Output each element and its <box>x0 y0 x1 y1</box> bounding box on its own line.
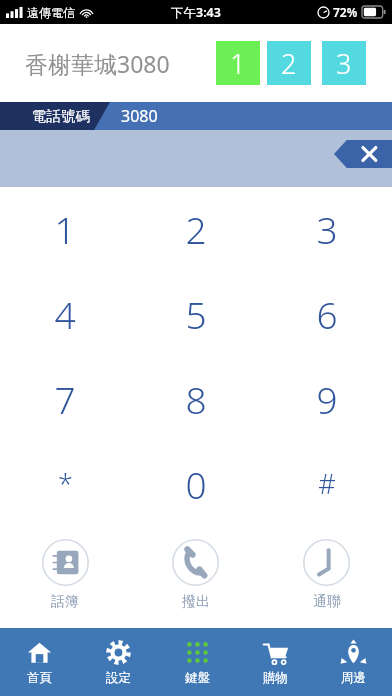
staticText: * <box>58 465 73 502</box>
staticText: 設定 <box>106 670 131 686</box>
staticText: 話簿 <box>51 593 79 611</box>
staticText: 下午3:43 <box>171 4 221 21</box>
staticText: 首頁 <box>27 670 52 686</box>
staticText: 3 <box>336 45 352 82</box>
staticText: 撥出 <box>182 593 210 611</box>
button[interactable]: 撥出 <box>130 526 261 628</box>
staticText: 0 <box>185 459 207 509</box>
button[interactable]: 3 <box>322 41 366 85</box>
staticText: 72% <box>333 4 358 20</box>
staticText: 鍵盤 <box>185 670 210 686</box>
button[interactable]: Delete <box>334 140 392 168</box>
button[interactable]: 5 <box>130 271 261 356</box>
staticText: 8 <box>185 374 207 424</box>
button[interactable]: 2 <box>130 187 261 271</box>
staticText: 香榭華城3080 <box>25 48 170 79</box>
button[interactable]: 0 <box>130 441 261 526</box>
button[interactable]: 1 <box>216 41 260 85</box>
button[interactable]: 4 <box>0 271 130 356</box>
staticText: 通聯 <box>313 593 341 611</box>
button[interactable]: # <box>261 441 392 526</box>
staticText: 2 <box>185 204 207 254</box>
button[interactable]: 周邊 <box>314 628 392 696</box>
staticText: 電話號碼 <box>32 107 90 125</box>
staticText: 周邊 <box>341 670 366 686</box>
staticText: 6 <box>316 289 338 339</box>
button[interactable]: 7 <box>0 356 130 441</box>
button[interactable]: 2 <box>267 41 311 85</box>
button[interactable]: 6 <box>261 271 392 356</box>
button[interactable]: 設定 <box>79 628 158 696</box>
staticText: # <box>318 465 336 502</box>
staticText: 1 <box>54 204 76 254</box>
staticText: 9 <box>316 374 338 424</box>
button[interactable]: * <box>0 441 130 526</box>
button[interactable]: 3 <box>261 187 392 271</box>
staticText: 4 <box>54 289 76 339</box>
staticText: 2 <box>281 45 297 82</box>
staticText: 5 <box>185 289 207 339</box>
button[interactable]: 8 <box>130 356 261 441</box>
button[interactable]: 話簿 <box>0 526 130 628</box>
staticText: 3 <box>316 204 338 254</box>
staticText: 7 <box>54 374 76 424</box>
staticText: 購物 <box>263 670 288 686</box>
button[interactable]: 通聯 <box>261 526 392 628</box>
button[interactable]: 9 <box>261 356 392 441</box>
staticText: 遠傳電信 <box>27 5 75 20</box>
staticText: 1 <box>230 45 246 82</box>
staticText: 3080 <box>121 105 158 127</box>
button[interactable]: 鍵盤 <box>158 628 236 696</box>
button[interactable]: 購物 <box>236 628 314 696</box>
button[interactable]: 首頁 <box>0 628 79 696</box>
button[interactable]: 1 <box>0 187 130 271</box>
